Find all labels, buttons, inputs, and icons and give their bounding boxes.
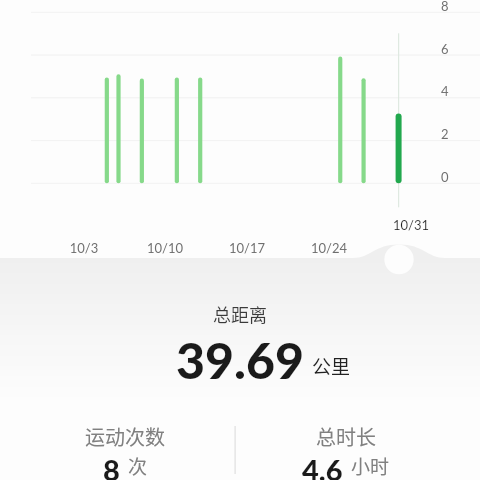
staticText: 10/17 bbox=[217, 240, 277, 256]
button[interactable]: 总时长 bbox=[266, 422, 426, 480]
staticText: 10/24 bbox=[299, 240, 359, 256]
staticText: 次 bbox=[128, 452, 148, 478]
staticText: 总时长 bbox=[316, 422, 376, 451]
staticText: 2 bbox=[441, 126, 449, 142]
staticText: 公里 bbox=[312, 352, 351, 380]
button[interactable]: Daily distance chart bbox=[0, 0, 480, 200]
staticText: 总距离 bbox=[213, 301, 267, 327]
staticText: 8 bbox=[103, 452, 120, 480]
staticText: 8 bbox=[441, 0, 449, 14]
button[interactable]: 运动次数 bbox=[45, 422, 205, 480]
staticText: 4 bbox=[441, 83, 449, 99]
staticText: 0 bbox=[441, 169, 449, 185]
button[interactable]: 总距离 bbox=[0, 301, 480, 327]
staticText: 4.6 bbox=[302, 452, 343, 480]
staticText: 10/3 bbox=[54, 240, 114, 256]
staticText: 10/31 bbox=[381, 217, 441, 233]
staticText: 运动次数 bbox=[85, 422, 165, 451]
staticText: 10/10 bbox=[135, 240, 195, 256]
staticText: 6 bbox=[441, 41, 449, 57]
staticText: 小时 bbox=[351, 452, 390, 478]
button[interactable]: Expand summary bbox=[384, 245, 414, 275]
staticText: 39.69 bbox=[176, 330, 304, 390]
